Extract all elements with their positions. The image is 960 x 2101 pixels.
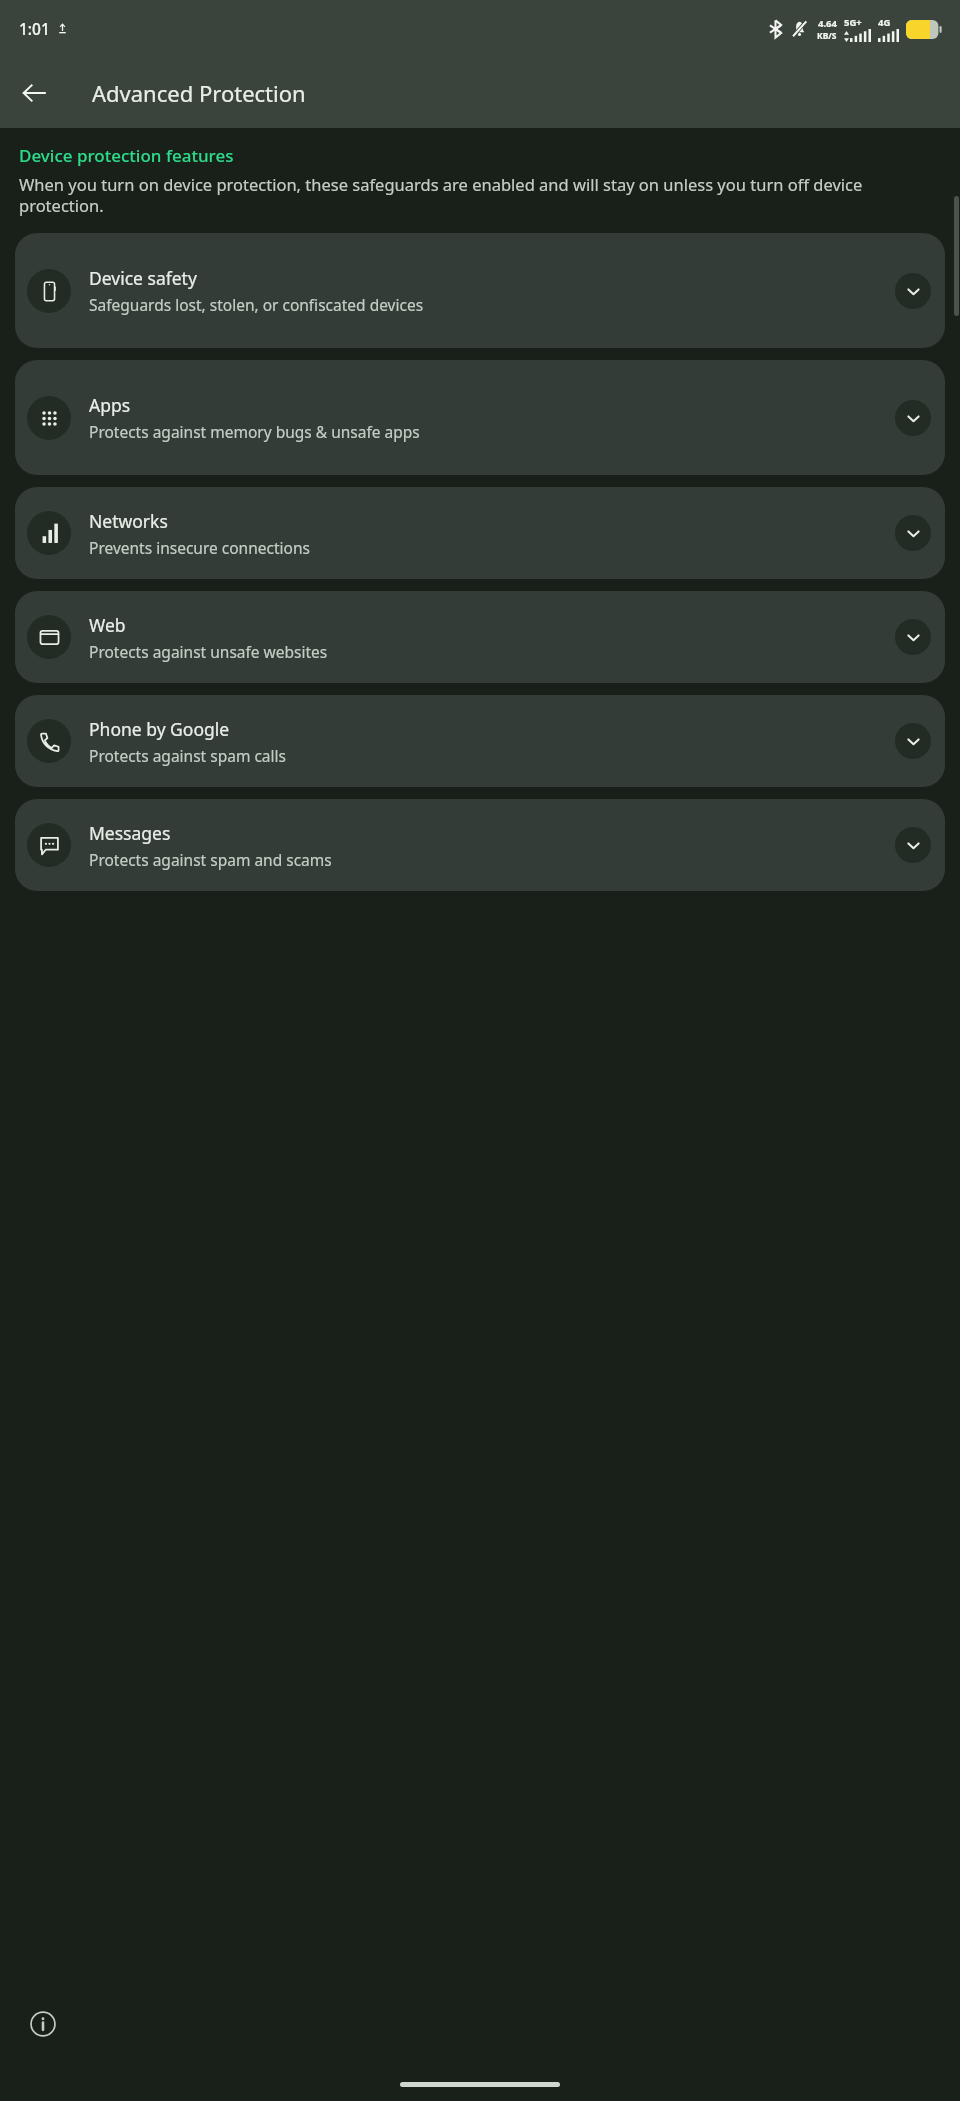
button[interactable]: More information — [22, 2003, 64, 2045]
staticText: KB/S — [817, 30, 837, 42]
staticText: 5G+ — [844, 16, 862, 29]
button[interactable]: Expand Web — [895, 619, 931, 655]
staticText: Phone by Google — [89, 717, 230, 741]
staticText: Web — [89, 613, 126, 637]
button[interactable]: Messages — [15, 799, 945, 891]
button[interactable]: Networks — [15, 487, 945, 579]
staticText: Protects against memory bugs & unsafe ap… — [89, 421, 420, 442]
staticText: Advanced Protection — [92, 78, 306, 108]
staticText: When you turn on device protection, thes… — [19, 173, 941, 217]
staticText: Apps — [89, 393, 131, 417]
staticText: Safeguards lost, stolen, or confiscated … — [89, 294, 424, 315]
button[interactable]: Expand Device safety — [895, 273, 931, 309]
button[interactable]: Back — [10, 69, 58, 117]
staticText: Protects against spam calls — [89, 745, 286, 766]
staticText: 4G — [878, 16, 891, 29]
staticText: 1:01 — [19, 18, 50, 39]
staticText: Messages — [89, 821, 171, 845]
button[interactable]: Expand Messages — [895, 827, 931, 863]
staticText: 4.64 — [818, 17, 837, 30]
staticText: Protects against unsafe websites — [89, 641, 328, 662]
staticText: Device safety — [89, 266, 197, 290]
button[interactable]: Expand Networks — [895, 515, 931, 551]
button[interactable]: Web — [15, 591, 945, 683]
button[interactable]: Phone by Google — [15, 695, 945, 787]
staticText: Protects against spam and scams — [89, 849, 332, 870]
staticText: Device protection features — [19, 144, 234, 167]
button[interactable]: Apps — [15, 360, 945, 475]
button[interactable]: Device safety — [15, 233, 945, 348]
button[interactable]: Expand Apps — [895, 400, 931, 436]
staticText: Networks — [89, 509, 168, 533]
staticText: Prevents insecure connections — [89, 537, 310, 558]
button[interactable]: Expand Phone by Google — [895, 723, 931, 759]
